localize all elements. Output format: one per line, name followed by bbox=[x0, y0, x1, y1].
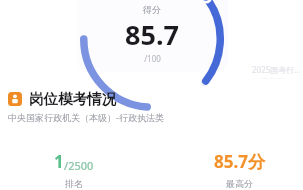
staticText: 最高分 bbox=[226, 178, 253, 189]
staticText: 85.7 bbox=[125, 16, 179, 53]
staticText: 1 bbox=[54, 150, 64, 173]
button[interactable]: 85.7分 bbox=[191, 150, 287, 189]
button[interactable]: 岗位模考情况 bbox=[8, 90, 122, 108]
other: 得分 85.7 / 100 bbox=[79, 0, 225, 112]
staticText: 排名 bbox=[65, 178, 83, 189]
staticText: /100 bbox=[144, 53, 161, 64]
staticText: /2500 bbox=[64, 158, 94, 173]
staticText: 中央国家行政机关（本级）-行政执法类 bbox=[8, 111, 164, 123]
staticText: 得分 bbox=[143, 4, 161, 15]
button[interactable]: 1 bbox=[14, 150, 134, 189]
staticText: 85.7分 bbox=[214, 150, 265, 173]
staticText: 岗位模考情况 bbox=[29, 90, 116, 108]
staticText: 2025国考行… bbox=[252, 64, 301, 75]
